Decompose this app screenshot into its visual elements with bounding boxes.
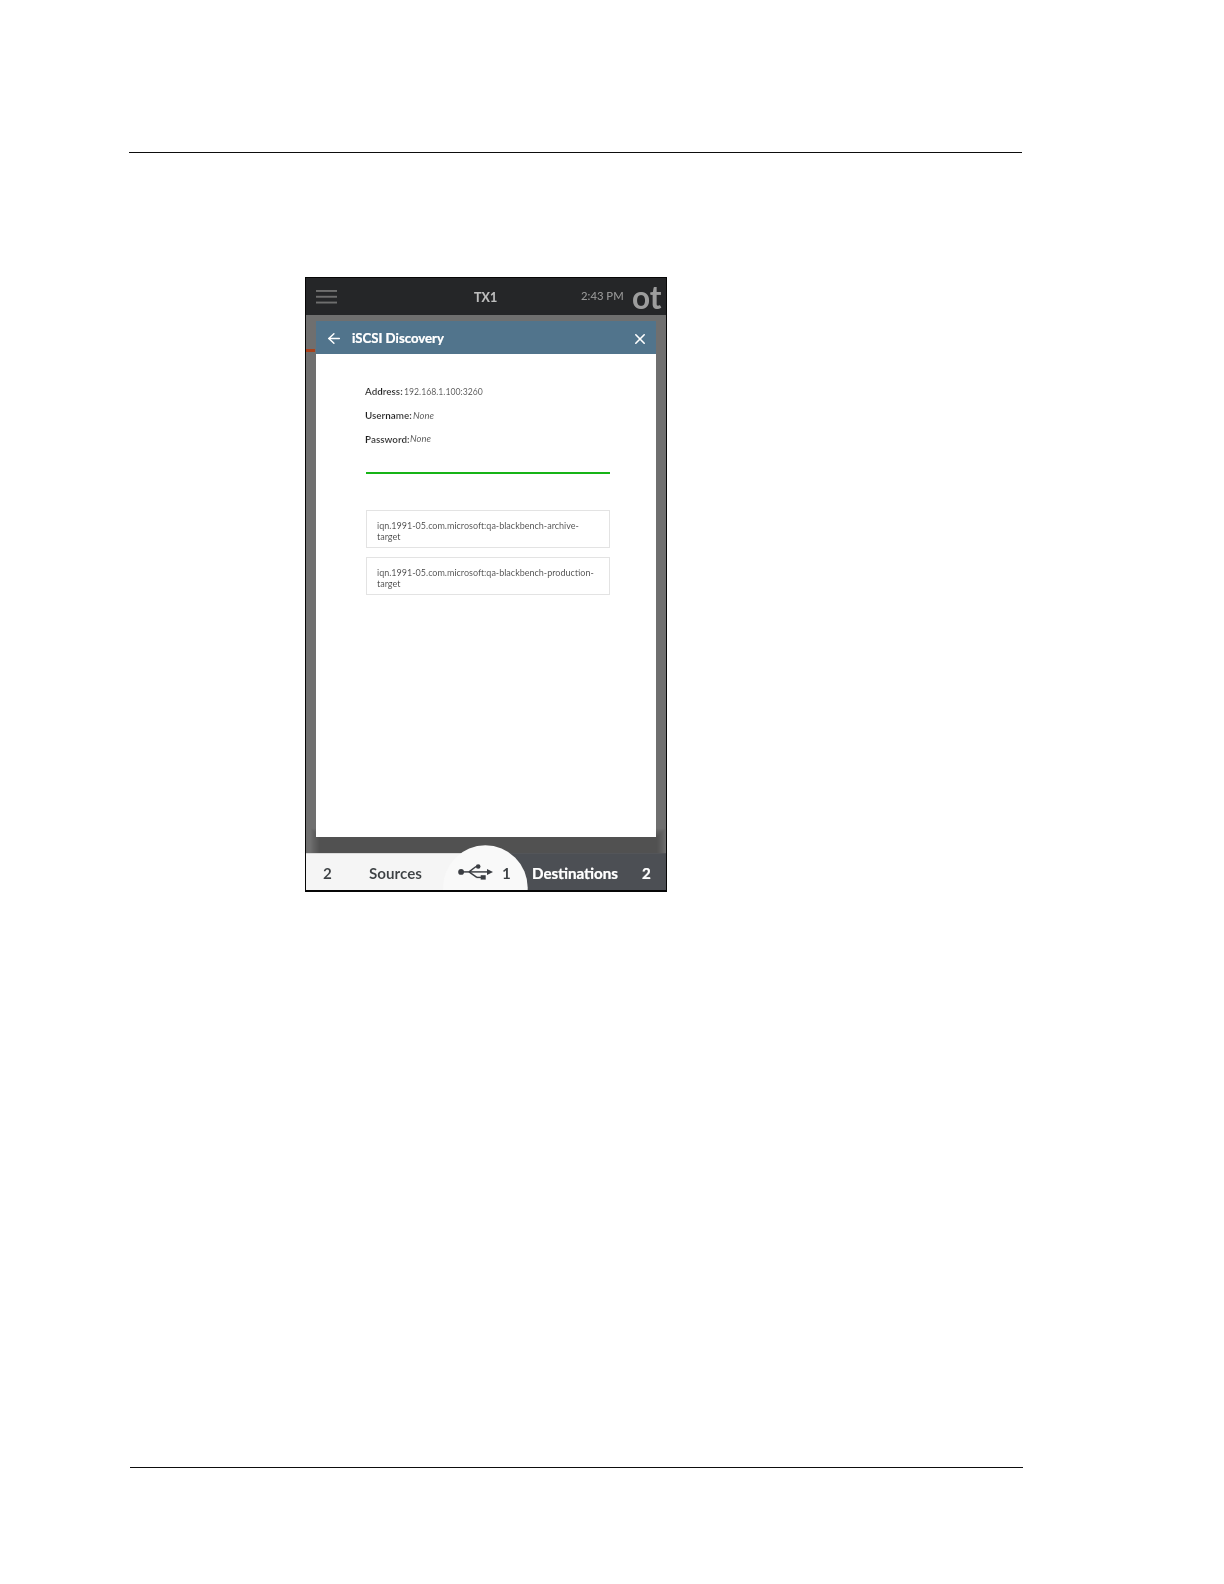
staticText: TX1	[474, 290, 498, 305]
staticText: iqn.1991-05.com.microsoft:qa-blackbench-…	[377, 567, 594, 578]
staticText: target	[377, 531, 401, 542]
button[interactable]: Menu	[310, 284, 343, 310]
staticText: iqn.1991-05.com.microsoft:qa-blackbench-…	[377, 520, 579, 531]
button[interactable]: iqn.1991-05.com.microsoft:qa-blackbench-…	[366, 557, 610, 595]
button[interactable]: Close	[629, 328, 651, 350]
staticText: 2	[642, 864, 651, 882]
staticText: Destinations	[532, 864, 618, 882]
button[interactable]: Back	[322, 325, 346, 349]
staticText: Address:	[365, 385, 403, 397]
staticText: None	[413, 410, 434, 421]
staticText: 1	[502, 864, 511, 882]
staticText: Username:	[365, 409, 412, 421]
staticText: Sources	[369, 864, 423, 882]
button[interactable]: 2	[306, 853, 443, 892]
staticText: 2	[323, 864, 332, 882]
staticText: 192.168.1.100:3260	[404, 386, 483, 396]
button[interactable]: iqn.1991-05.com.microsoft:qa-blackbench-…	[366, 510, 610, 548]
staticText: ot	[632, 278, 662, 315]
button[interactable]: Destinations	[530, 853, 666, 892]
staticText: iSCSI Discovery	[352, 330, 444, 346]
staticText: target	[377, 578, 401, 589]
staticText: 2:43 PM	[581, 289, 624, 303]
staticText: Password:	[365, 433, 410, 445]
button[interactable]: USB connection	[443, 853, 530, 892]
staticText: None	[410, 433, 431, 444]
